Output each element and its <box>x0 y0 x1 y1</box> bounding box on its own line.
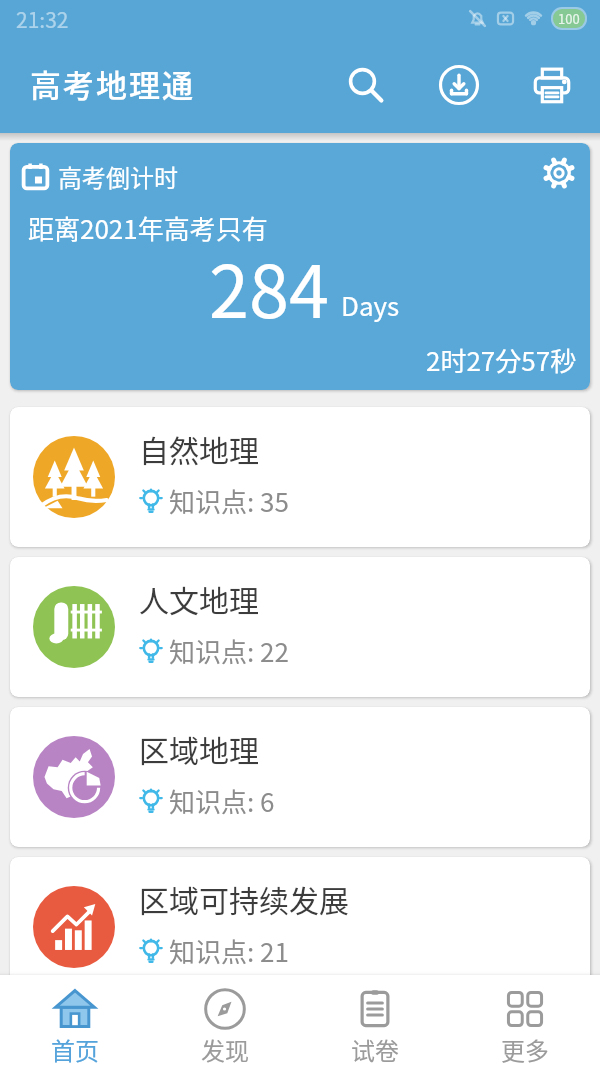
staticText: 区域地理 <box>139 727 259 770</box>
staticText: 知识点: 22 <box>169 632 289 670</box>
staticText: 284 <box>209 234 329 338</box>
button[interactable]: 人文地理 <box>10 557 590 697</box>
staticText: 2时27分57秒 <box>426 341 577 379</box>
staticText: 自然地理 <box>139 427 259 470</box>
button[interactable]: 发现 <box>150 975 300 1067</box>
staticText: 更多 <box>501 1032 549 1067</box>
staticText: 高考地理通 <box>30 61 195 106</box>
staticText: 距离2021年高考只有 <box>28 209 268 247</box>
staticText: 首页 <box>51 1032 99 1067</box>
staticText: 人文地理 <box>139 577 259 620</box>
staticText: 发现 <box>201 1032 249 1067</box>
button[interactable]: 首页 <box>0 975 150 1067</box>
button[interactable]: 区域地理 <box>10 707 590 847</box>
staticText: 知识点: 35 <box>169 482 289 520</box>
staticText: 100 <box>558 9 580 28</box>
staticText: Days <box>341 286 400 324</box>
staticText: 区域可持续发展 <box>139 877 349 920</box>
staticText: 知识点: 21 <box>169 932 289 970</box>
staticText: 知识点: 6 <box>169 782 275 820</box>
button[interactable]: 自然地理 <box>10 407 590 547</box>
button[interactable]: 高考倒计时 <box>10 143 590 390</box>
staticText: 高考倒计时 <box>58 159 178 194</box>
staticText: 试卷 <box>351 1032 399 1067</box>
button[interactable]: 区域可持续发展 <box>10 857 590 997</box>
button[interactable]: 试卷 <box>300 975 450 1067</box>
button[interactable]: 更多 <box>450 975 600 1067</box>
staticText: 21:32 <box>16 4 69 34</box>
